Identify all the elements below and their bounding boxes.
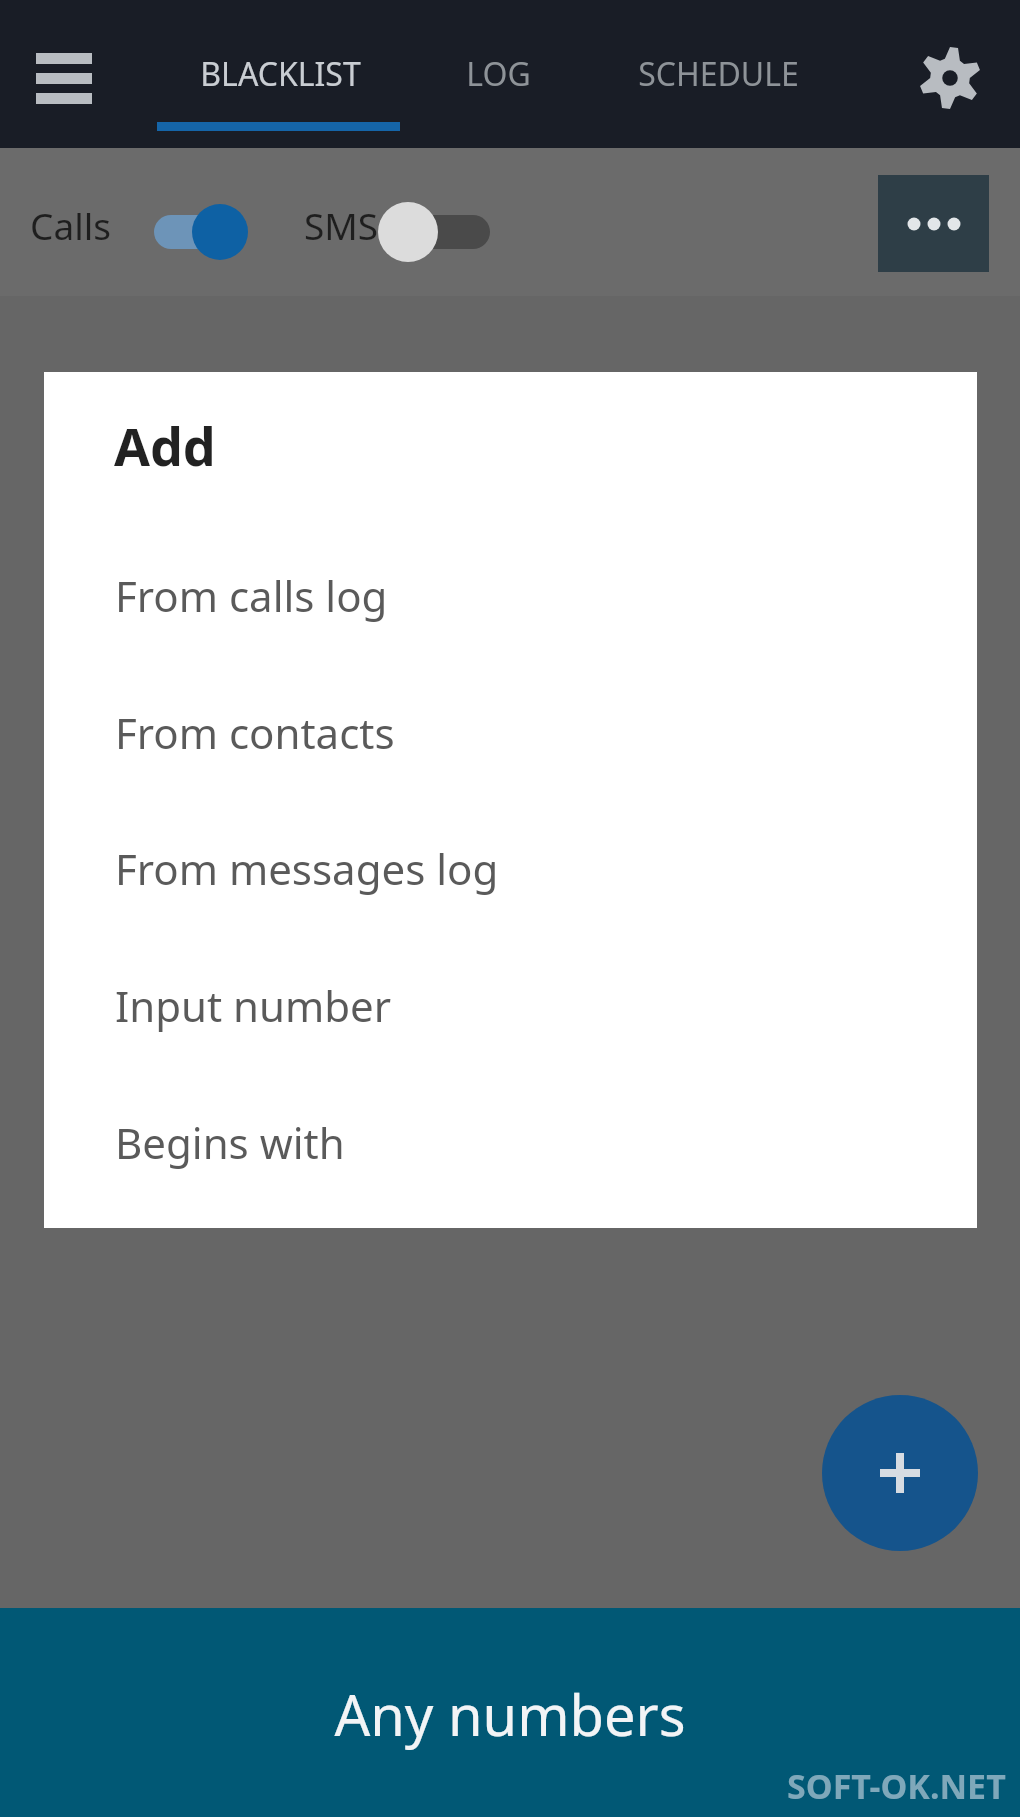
button[interactable]: SMS [292, 196, 391, 254]
staticText: Any numbers [334, 1676, 686, 1752]
staticText: From messages log [115, 840, 499, 897]
button: Add [114, 410, 216, 481]
button[interactable]: Calls blocking enabled [140, 196, 260, 268]
button[interactable]: SCHEDULE [583, 26, 853, 122]
staticText: Add [114, 410, 216, 481]
staticText: From calls log [115, 567, 388, 624]
button[interactable]: Settings [902, 30, 998, 126]
button[interactable]: From messages log [44, 810, 977, 926]
button[interactable]: More options [878, 175, 989, 272]
staticText: Calls [30, 200, 111, 250]
button[interactable]: Input number [44, 947, 977, 1063]
staticText: From contacts [115, 704, 395, 761]
button[interactable]: LOG [363, 26, 633, 122]
button[interactable]: Add number [822, 1395, 978, 1551]
staticText: Begins with [115, 1114, 345, 1171]
button[interactable]: Open navigation menu [20, 32, 104, 124]
staticText: SMS [304, 200, 379, 250]
staticText: SOFT-OK.NET [787, 1763, 1006, 1809]
staticText: LOG [466, 52, 531, 96]
button[interactable]: From calls log [44, 537, 977, 653]
button[interactable]: From contacts [44, 674, 977, 790]
button[interactable]: SMS blocking disabled [362, 196, 502, 268]
staticText: Input number [115, 977, 392, 1034]
staticText: SCHEDULE [638, 52, 799, 96]
staticText: BLACKLIST [200, 52, 361, 96]
button[interactable]: Calls [18, 196, 123, 254]
button[interactable]: Any numbers [0, 1608, 1020, 1817]
button[interactable]: BLACKLIST [145, 26, 415, 122]
button[interactable]: Begins with [44, 1084, 977, 1200]
